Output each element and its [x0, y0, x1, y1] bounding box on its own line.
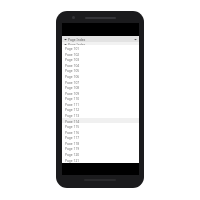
- button[interactable]: Page 109: [62, 90, 139, 96]
- staticText: Page Index: [68, 37, 86, 41]
- button[interactable]: Page 120: [62, 151, 139, 157]
- staticText: Page 105: [65, 68, 80, 72]
- button[interactable]: Page 117: [62, 134, 139, 140]
- staticText: Page 120: [65, 152, 80, 156]
- staticText: Page 121: [65, 158, 80, 162]
- staticText: Page 102: [65, 52, 80, 56]
- other: Expand: [134, 38, 137, 41]
- staticText: Page 107: [65, 80, 80, 84]
- staticText: Page 116: [65, 130, 80, 134]
- button[interactable]: Page 116: [62, 129, 139, 135]
- button[interactable]: Page 110: [62, 95, 139, 101]
- staticText: Page 110: [65, 96, 80, 100]
- staticText: Page 117: [65, 135, 80, 139]
- staticText: Page 101: [65, 46, 80, 50]
- staticText: Page 108: [65, 85, 80, 89]
- staticText: Page 119: [65, 146, 80, 150]
- staticText: Page 104: [65, 63, 80, 67]
- button[interactable]: Page 101: [62, 45, 139, 51]
- staticText: Page 118: [65, 141, 80, 145]
- button[interactable]: Page 115: [62, 123, 139, 129]
- staticText: Page 115: [65, 124, 80, 128]
- staticText: Page 114: [65, 119, 80, 123]
- staticText: Page 113: [65, 113, 80, 117]
- button[interactable]: Page 118: [62, 140, 139, 146]
- staticText: Page 109: [65, 91, 80, 95]
- button[interactable]: Page 102: [62, 51, 139, 57]
- button[interactable]: Page Index: [62, 36, 139, 42]
- button[interactable]: Page 121: [62, 157, 139, 163]
- button[interactable]: Page 112: [62, 106, 139, 112]
- button[interactable]: Page 106: [62, 73, 139, 79]
- staticText: Page Index: [68, 42, 86, 46]
- button[interactable]: Page 105: [62, 67, 139, 73]
- button[interactable]: Page 107: [62, 79, 139, 85]
- button[interactable]: Page 103: [62, 56, 139, 62]
- button[interactable]: Page 104: [62, 62, 139, 68]
- button[interactable]: Page 111: [62, 101, 139, 107]
- button[interactable]: Page 108: [62, 84, 139, 90]
- button[interactable]: Page 113: [62, 112, 139, 118]
- button[interactable]: Page 114: [62, 118, 139, 124]
- staticText: Page 103: [65, 57, 80, 61]
- button[interactable]: Page Index: [62, 42, 139, 46]
- staticText: Page 106: [65, 74, 80, 78]
- button[interactable]: Page 119: [62, 145, 139, 151]
- staticText: Page 112: [65, 107, 80, 111]
- staticText: Page 111: [65, 102, 80, 106]
